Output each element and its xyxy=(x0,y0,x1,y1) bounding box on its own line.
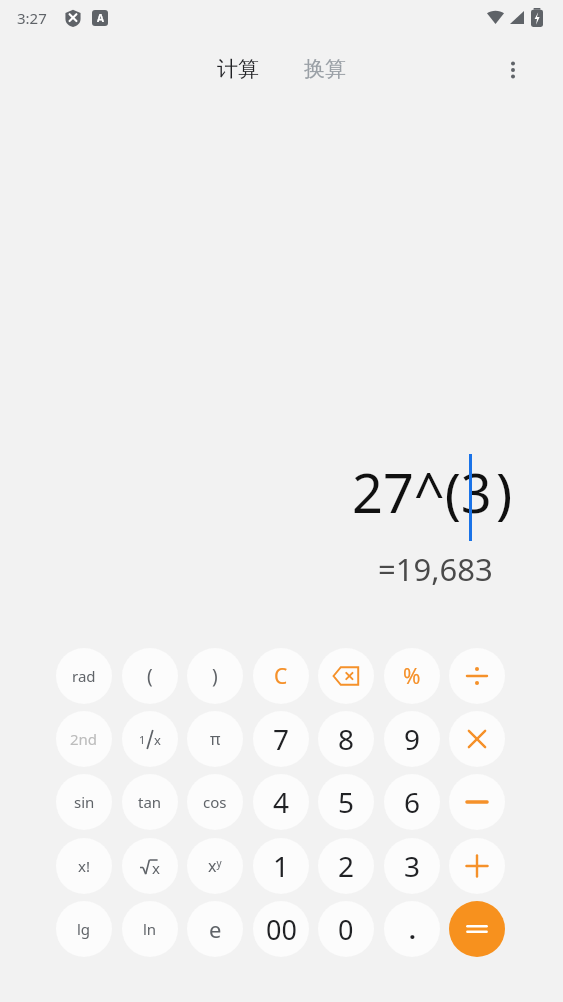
button[interactable]: 7 xyxy=(253,711,309,767)
staticText: 2nd xyxy=(70,729,98,749)
button[interactable]: ln xyxy=(122,901,178,957)
button[interactable]: % xyxy=(384,648,440,704)
staticText: e xyxy=(209,914,222,944)
button[interactable]: 5 xyxy=(318,774,374,830)
button[interactable]: e xyxy=(187,901,243,957)
staticText: 3:27 xyxy=(17,8,47,28)
button[interactable]: π xyxy=(187,711,243,767)
button[interactable]: lg xyxy=(56,901,112,957)
button[interactable]: . xyxy=(384,901,440,957)
staticText: 换算 xyxy=(304,56,346,82)
button[interactable]: 3 xyxy=(384,838,440,894)
staticText: sin xyxy=(74,792,95,812)
button[interactable]: 1 xyxy=(122,711,178,767)
staticText: ) xyxy=(212,663,218,689)
button[interactable]: 1 xyxy=(253,838,309,894)
button[interactable]: sin xyxy=(56,774,112,830)
staticText: 00 xyxy=(266,911,297,948)
staticText: lg xyxy=(77,919,91,939)
staticText: 1 xyxy=(139,732,146,747)
button[interactable]: C xyxy=(253,648,309,704)
staticText: . xyxy=(409,913,416,946)
button[interactable]: 换算 xyxy=(296,52,354,86)
button[interactable]: rad xyxy=(56,648,112,704)
button[interactable]: 2nd xyxy=(56,711,112,767)
button[interactable]: ( xyxy=(122,648,178,704)
button[interactable]: xy xyxy=(187,838,243,894)
button[interactable]: 计算 xyxy=(209,52,267,86)
button[interactable]: tan xyxy=(122,774,178,830)
staticText: 4 xyxy=(273,783,290,821)
staticText: 6 xyxy=(404,783,421,821)
button[interactable]: Minus xyxy=(449,774,505,830)
staticText: rad xyxy=(72,666,96,686)
button[interactable]: ) xyxy=(187,648,243,704)
staticText: =19,683 xyxy=(378,548,493,590)
staticText: 8 xyxy=(338,720,355,758)
button[interactable]: 9 xyxy=(384,711,440,767)
button[interactable]: 0 xyxy=(318,901,374,957)
button[interactable]: More options xyxy=(489,46,537,94)
button[interactable]: Multiply xyxy=(449,711,505,767)
staticText: ln xyxy=(143,919,157,939)
button[interactable]: 2 xyxy=(318,838,374,894)
staticText: ) xyxy=(496,455,513,529)
button[interactable]: Plus xyxy=(449,838,505,894)
button[interactable]: x! xyxy=(56,838,112,894)
staticText: ( xyxy=(147,663,153,689)
staticText: 9 xyxy=(404,720,421,758)
staticText: C xyxy=(274,662,288,691)
staticText: xy xyxy=(208,855,222,877)
button[interactable]: Divide xyxy=(449,648,505,704)
staticText: 2 xyxy=(338,847,355,885)
staticText: 0 xyxy=(338,911,354,948)
staticText: % xyxy=(403,662,421,691)
button[interactable]: Equals xyxy=(449,901,505,957)
staticText: x xyxy=(154,731,161,749)
staticText: 5 xyxy=(338,783,355,821)
staticText: 7 xyxy=(273,720,290,758)
button[interactable]: 8 xyxy=(318,711,374,767)
staticText: 3 xyxy=(404,847,421,885)
button[interactable]: Backspace xyxy=(318,648,374,704)
staticText: x xyxy=(152,858,160,878)
staticText: 27^(3 xyxy=(352,455,492,529)
staticText: tan xyxy=(138,792,162,812)
staticText: x! xyxy=(78,856,90,876)
staticText: π xyxy=(210,728,221,750)
button[interactable]: cos xyxy=(187,774,243,830)
button[interactable]: 00 xyxy=(253,901,309,957)
button[interactable]: 4 xyxy=(253,774,309,830)
staticText: 计算 xyxy=(217,56,259,82)
button[interactable]: 6 xyxy=(384,774,440,830)
staticText: cos xyxy=(203,792,227,812)
staticText: A xyxy=(97,11,104,25)
button[interactable]: x xyxy=(122,838,178,894)
staticText: 1 xyxy=(273,847,290,885)
